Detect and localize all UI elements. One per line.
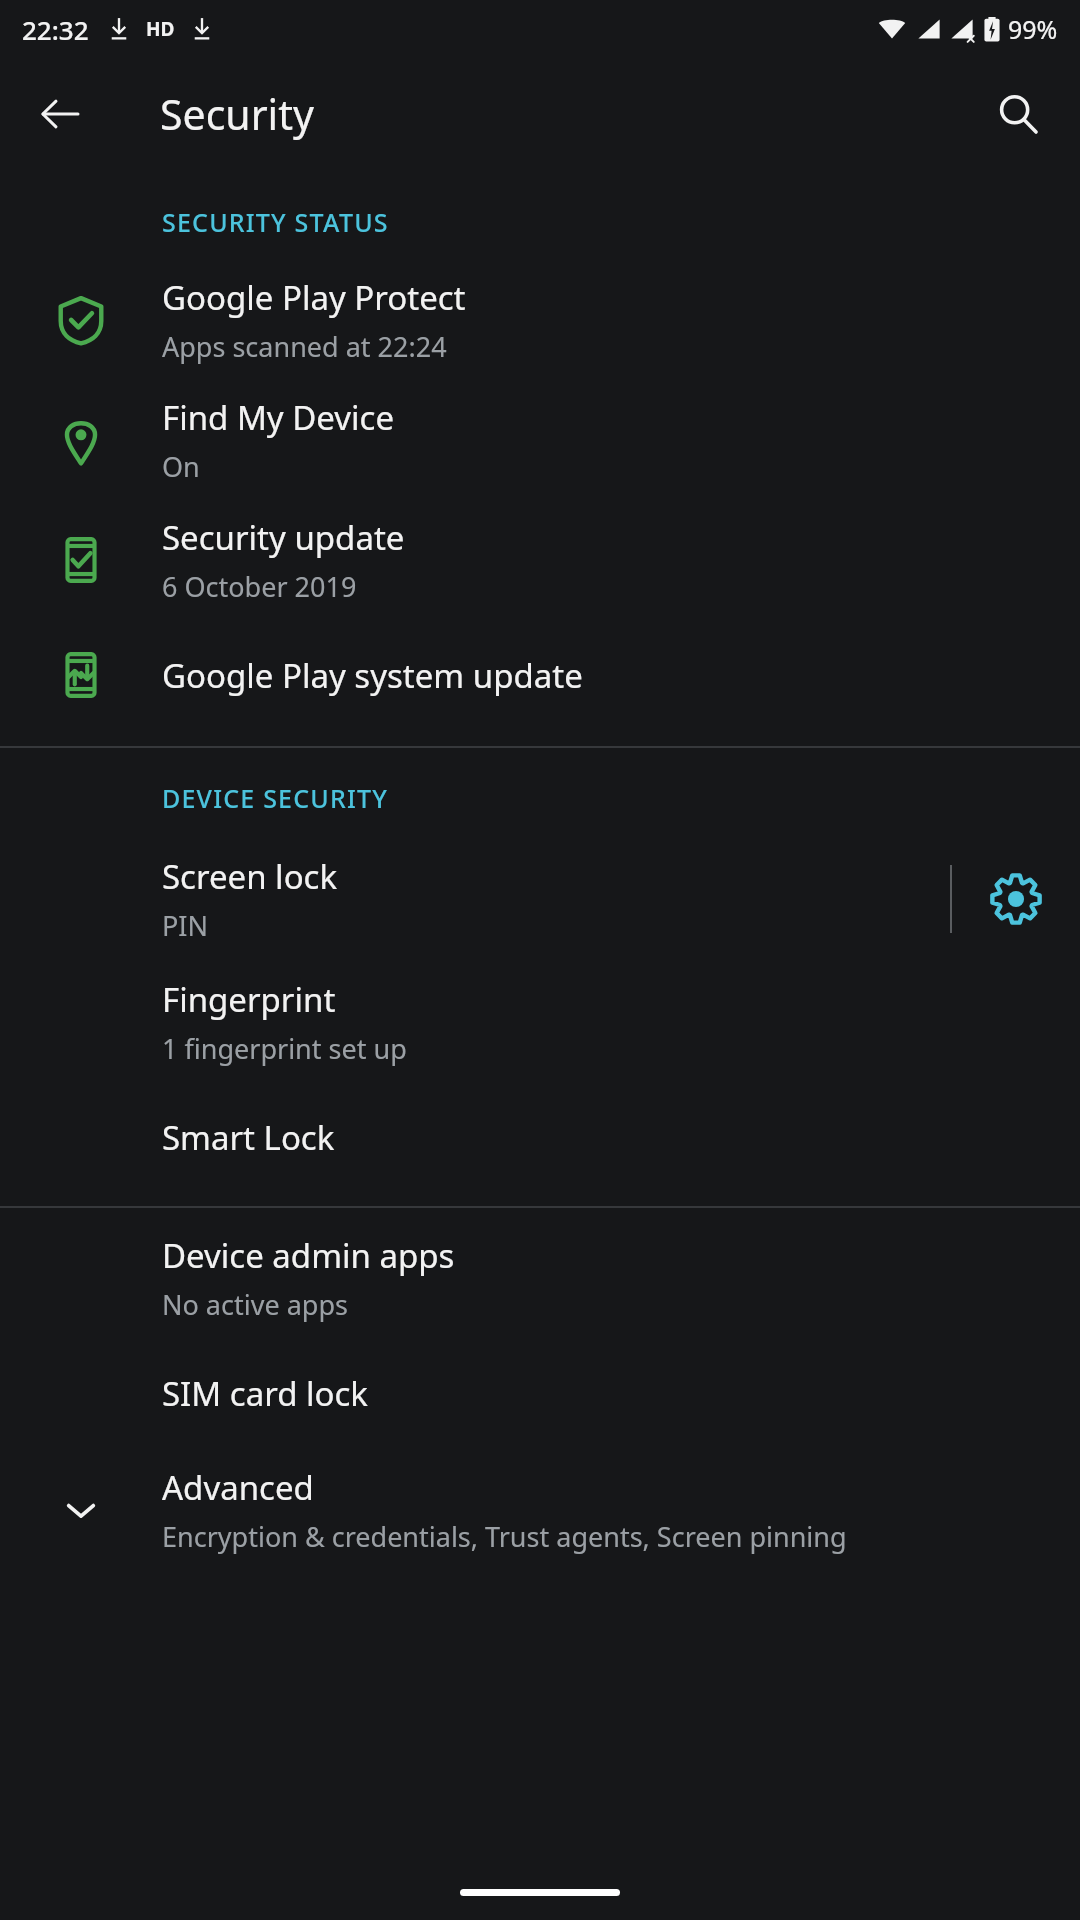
button[interactable]: SIM card lock xyxy=(0,1338,1080,1448)
staticText: 1 fingerprint set up xyxy=(162,1030,407,1067)
button[interactable]: Security update xyxy=(0,500,1080,620)
staticText: SIM card lock xyxy=(162,1371,368,1416)
button[interactable]: Fingerprint xyxy=(0,962,1080,1082)
button[interactable]: Screen lock xyxy=(0,836,950,962)
button[interactable]: Smart Lock xyxy=(0,1082,1080,1192)
staticText: Security xyxy=(160,86,314,142)
staticText: Google Play system update xyxy=(162,653,583,698)
staticText: HD xyxy=(146,16,175,42)
staticText: Device admin apps xyxy=(162,1233,455,1278)
staticText: No active apps xyxy=(162,1286,348,1323)
staticText: Advanced xyxy=(162,1465,314,1510)
staticText: Fingerprint xyxy=(162,977,336,1022)
button[interactable]: Advanced xyxy=(0,1448,1080,1572)
staticText: On xyxy=(162,448,200,485)
staticText: SECURITY STATUS xyxy=(162,205,389,239)
button[interactable]: Search xyxy=(984,80,1052,148)
staticText: 22:32 xyxy=(22,12,89,47)
staticText: Google Play Protect xyxy=(162,275,466,320)
staticText: Smart Lock xyxy=(162,1115,335,1160)
staticText: PIN xyxy=(162,907,209,944)
staticText: Encryption & credentials, Trust agents, … xyxy=(162,1518,847,1555)
button[interactable]: Find My Device xyxy=(0,380,1080,500)
staticText: 99% xyxy=(1008,12,1058,46)
button[interactable]: Back xyxy=(26,80,94,148)
staticText: Security update xyxy=(162,515,405,560)
staticText: DEVICE SECURITY xyxy=(162,781,389,815)
button[interactable]: Google Play Protect xyxy=(0,260,1080,380)
button[interactable]: Screen lock settings xyxy=(952,836,1080,962)
button[interactable]: Device admin apps xyxy=(0,1218,1080,1338)
staticText: 6 October 2019 xyxy=(162,568,357,605)
staticText: Find My Device xyxy=(162,395,395,440)
button[interactable]: Google Play system update xyxy=(0,620,1080,730)
staticText: Screen lock xyxy=(162,854,338,899)
staticText: Apps scanned at 22:24 xyxy=(162,328,447,365)
